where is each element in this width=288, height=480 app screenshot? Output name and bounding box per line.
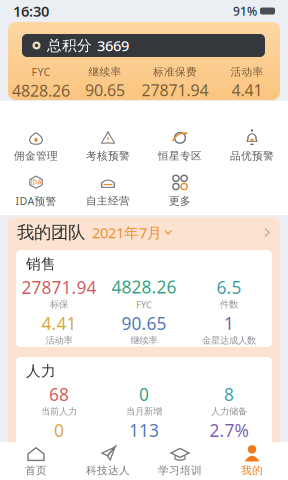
staticText: 3669: [97, 36, 129, 55]
staticText: 我的: [241, 464, 263, 477]
staticText: 件数: [220, 299, 238, 310]
staticText: 27871.94: [21, 276, 96, 299]
button[interactable]: 佣金管理: [0, 123, 72, 168]
staticText: 首页: [25, 464, 47, 477]
staticText: 91%: [233, 3, 257, 19]
button[interactable]: 我的团队: [8, 217, 280, 248]
staticText: 品优预警: [230, 149, 274, 162]
staticText: 科技达人: [86, 464, 130, 477]
staticText: 恒星专区: [158, 149, 202, 162]
staticText: 客户转化率: [206, 442, 251, 453]
staticText: 金星达成人数: [202, 335, 256, 346]
staticText: 本月脱落: [41, 442, 77, 453]
button[interactable]: 首页: [0, 442, 72, 479]
staticText: 113: [129, 419, 159, 442]
staticText: 学习培训: [158, 464, 202, 477]
staticText: 继续率: [130, 335, 157, 346]
staticText: 更多: [169, 194, 191, 207]
staticText: 2.7%: [209, 419, 248, 442]
staticText: 1: [224, 312, 234, 335]
staticText: 我的团队: [17, 222, 85, 243]
button[interactable]: 品优预警: [216, 123, 288, 168]
staticText: IDA预警: [15, 194, 56, 208]
staticText: 0: [139, 383, 149, 406]
button[interactable]: IDA: [0, 168, 72, 213]
staticText: 68: [49, 383, 69, 406]
staticText: FYC: [31, 65, 50, 79]
button[interactable]: 自主经营: [72, 168, 144, 213]
staticText: 16:30: [13, 1, 49, 21]
staticText: 当月新增: [126, 406, 162, 417]
staticText: 0: [54, 419, 64, 442]
staticText: 活动率: [45, 335, 72, 346]
staticText: 90.65: [121, 312, 166, 335]
staticText: 2021年7月: [92, 223, 162, 242]
staticText: 6.5: [216, 276, 241, 299]
staticText: 佣金管理: [14, 149, 58, 162]
staticText: 活动率: [230, 65, 263, 78]
staticText: 标保: [50, 299, 68, 310]
staticText: 4828.26: [111, 275, 176, 298]
staticText: 继续率: [88, 65, 121, 78]
staticText: 总积分: [47, 36, 92, 54]
staticText: 90.65: [85, 79, 125, 101]
staticText: 当前人力: [41, 406, 77, 417]
staticText: 标准保费: [153, 65, 197, 78]
staticText: 4.41: [41, 312, 76, 335]
staticText: 4.41: [231, 79, 262, 101]
staticText: FYC: [136, 298, 152, 311]
staticText: 8: [224, 383, 234, 406]
button[interactable]: 更多: [144, 168, 216, 213]
button[interactable]: 学习培训: [144, 442, 216, 479]
staticText: 人力储备: [211, 406, 247, 417]
button[interactable]: 总积分: [22, 34, 265, 57]
button[interactable]: 科技达人: [72, 442, 144, 479]
staticText: 人力: [26, 362, 56, 380]
button[interactable]: 我的: [216, 442, 288, 479]
button[interactable]: 考核预警: [72, 123, 144, 168]
staticText: IDA: [30, 177, 41, 186]
button[interactable]: 恒星专区: [144, 123, 216, 168]
staticText: 27871.94: [141, 79, 208, 101]
staticText: 考核预警: [86, 149, 130, 162]
staticText: 自主经营: [86, 194, 130, 207]
staticText: 销售: [26, 255, 56, 273]
staticText: 4828.26: [12, 80, 70, 101]
